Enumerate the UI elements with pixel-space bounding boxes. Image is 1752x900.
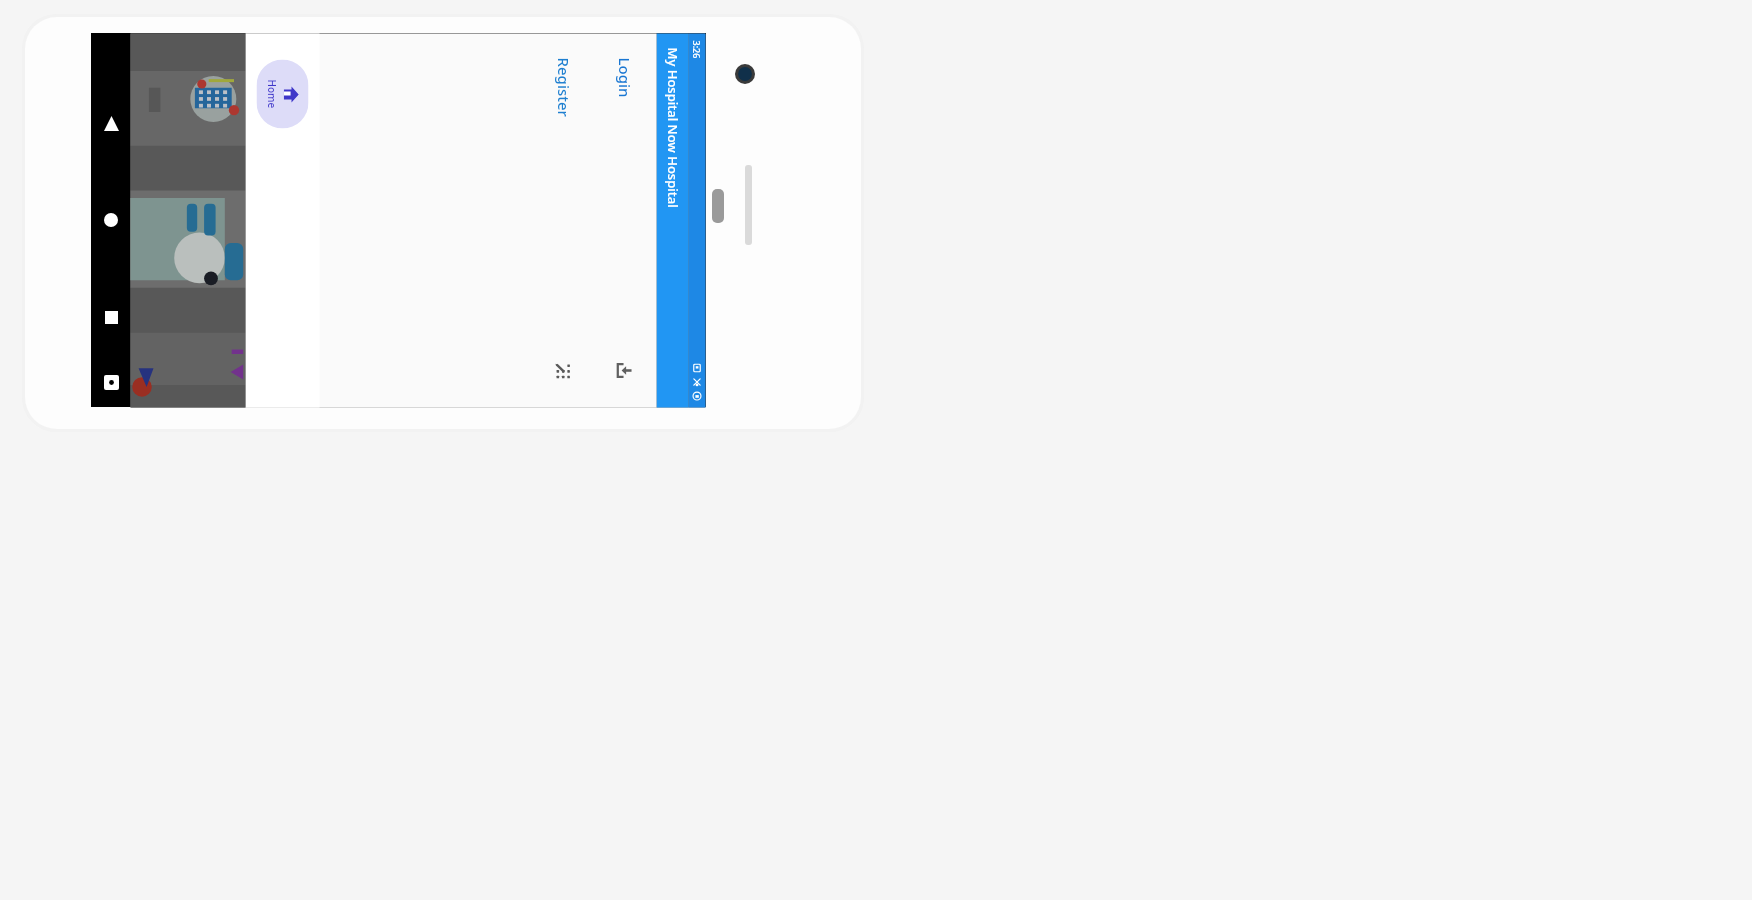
button[interactable]: Home [256,59,308,128]
button[interactable]: Login [608,55,640,99]
button[interactable]: Rotate screen [96,367,126,397]
staticText: Register [553,57,573,117]
staticText: My Hospital Now Hospital [663,47,681,208]
button[interactable]: Back [93,105,129,141]
staticText: Login [614,57,634,97]
button[interactable]: Register [547,55,579,119]
button[interactable]: Download [609,355,639,385]
button[interactable]: Recent apps [93,299,129,335]
button[interactable]: Dial pad [548,355,578,385]
button[interactable]: Home [93,202,129,238]
staticText: 3:26 [690,40,702,58]
staticText: Home [264,79,278,108]
